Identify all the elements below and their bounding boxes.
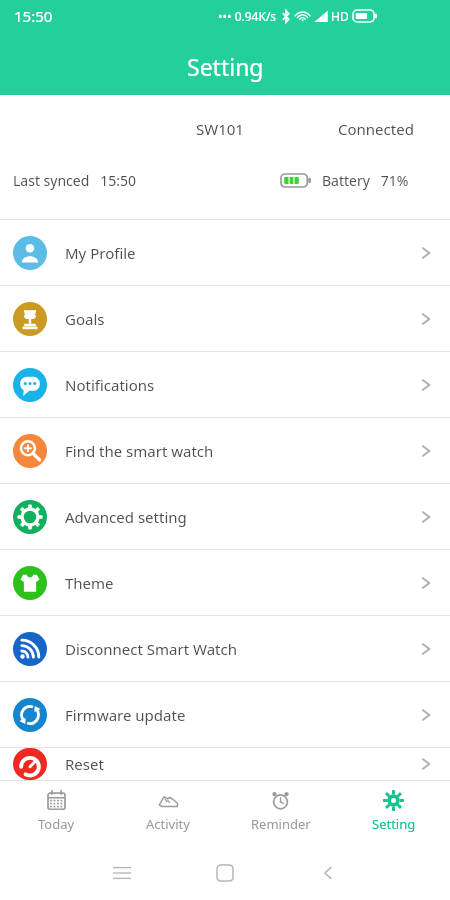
button[interactable]: Menu xyxy=(100,851,144,895)
button[interactable]: Home xyxy=(203,851,247,895)
staticText: Connected xyxy=(338,119,414,139)
staticText: Reset xyxy=(65,754,104,774)
staticText: Battery 71% xyxy=(322,171,409,190)
staticText: Disconnect Smart Watch xyxy=(65,639,237,659)
staticText: Firmware update xyxy=(65,705,186,725)
staticText: Activity xyxy=(146,815,190,833)
button[interactable]: Reset xyxy=(0,748,450,780)
staticText: Setting xyxy=(187,51,264,82)
staticText: Advanced setting xyxy=(65,507,187,527)
staticText: ••• 0.94K/s xyxy=(218,8,277,24)
button[interactable]: My Profile xyxy=(0,220,450,285)
staticText: Find the smart watch xyxy=(65,441,214,461)
staticText: My Profile xyxy=(65,243,136,263)
button[interactable]: Find the smart watch xyxy=(0,418,450,483)
button[interactable]: Notifications xyxy=(0,352,450,417)
button[interactable]: Theme xyxy=(0,550,450,615)
staticText: Notifications xyxy=(65,375,155,395)
button[interactable]: Activity xyxy=(112,780,224,845)
staticText: SW101 xyxy=(196,119,244,139)
button[interactable]: Firmware update xyxy=(0,682,450,747)
staticText: Today xyxy=(38,815,75,833)
button[interactable]: Disconnect Smart Watch xyxy=(0,616,450,681)
button[interactable]: Reminder xyxy=(224,780,337,845)
staticText: Last synced 15:50 xyxy=(13,171,137,190)
staticText: Goals xyxy=(65,309,105,329)
button[interactable]: Today xyxy=(0,780,112,845)
staticText: Theme xyxy=(65,573,114,593)
staticText: Reminder xyxy=(251,815,311,833)
button[interactable]: Setting xyxy=(337,780,450,845)
staticText: HD xyxy=(331,8,349,24)
staticText: Setting xyxy=(372,815,416,833)
button[interactable]: Goals xyxy=(0,286,450,351)
button[interactable]: Advanced setting xyxy=(0,484,450,549)
staticText: 15:50 xyxy=(14,6,53,26)
button[interactable]: Back xyxy=(306,851,350,895)
